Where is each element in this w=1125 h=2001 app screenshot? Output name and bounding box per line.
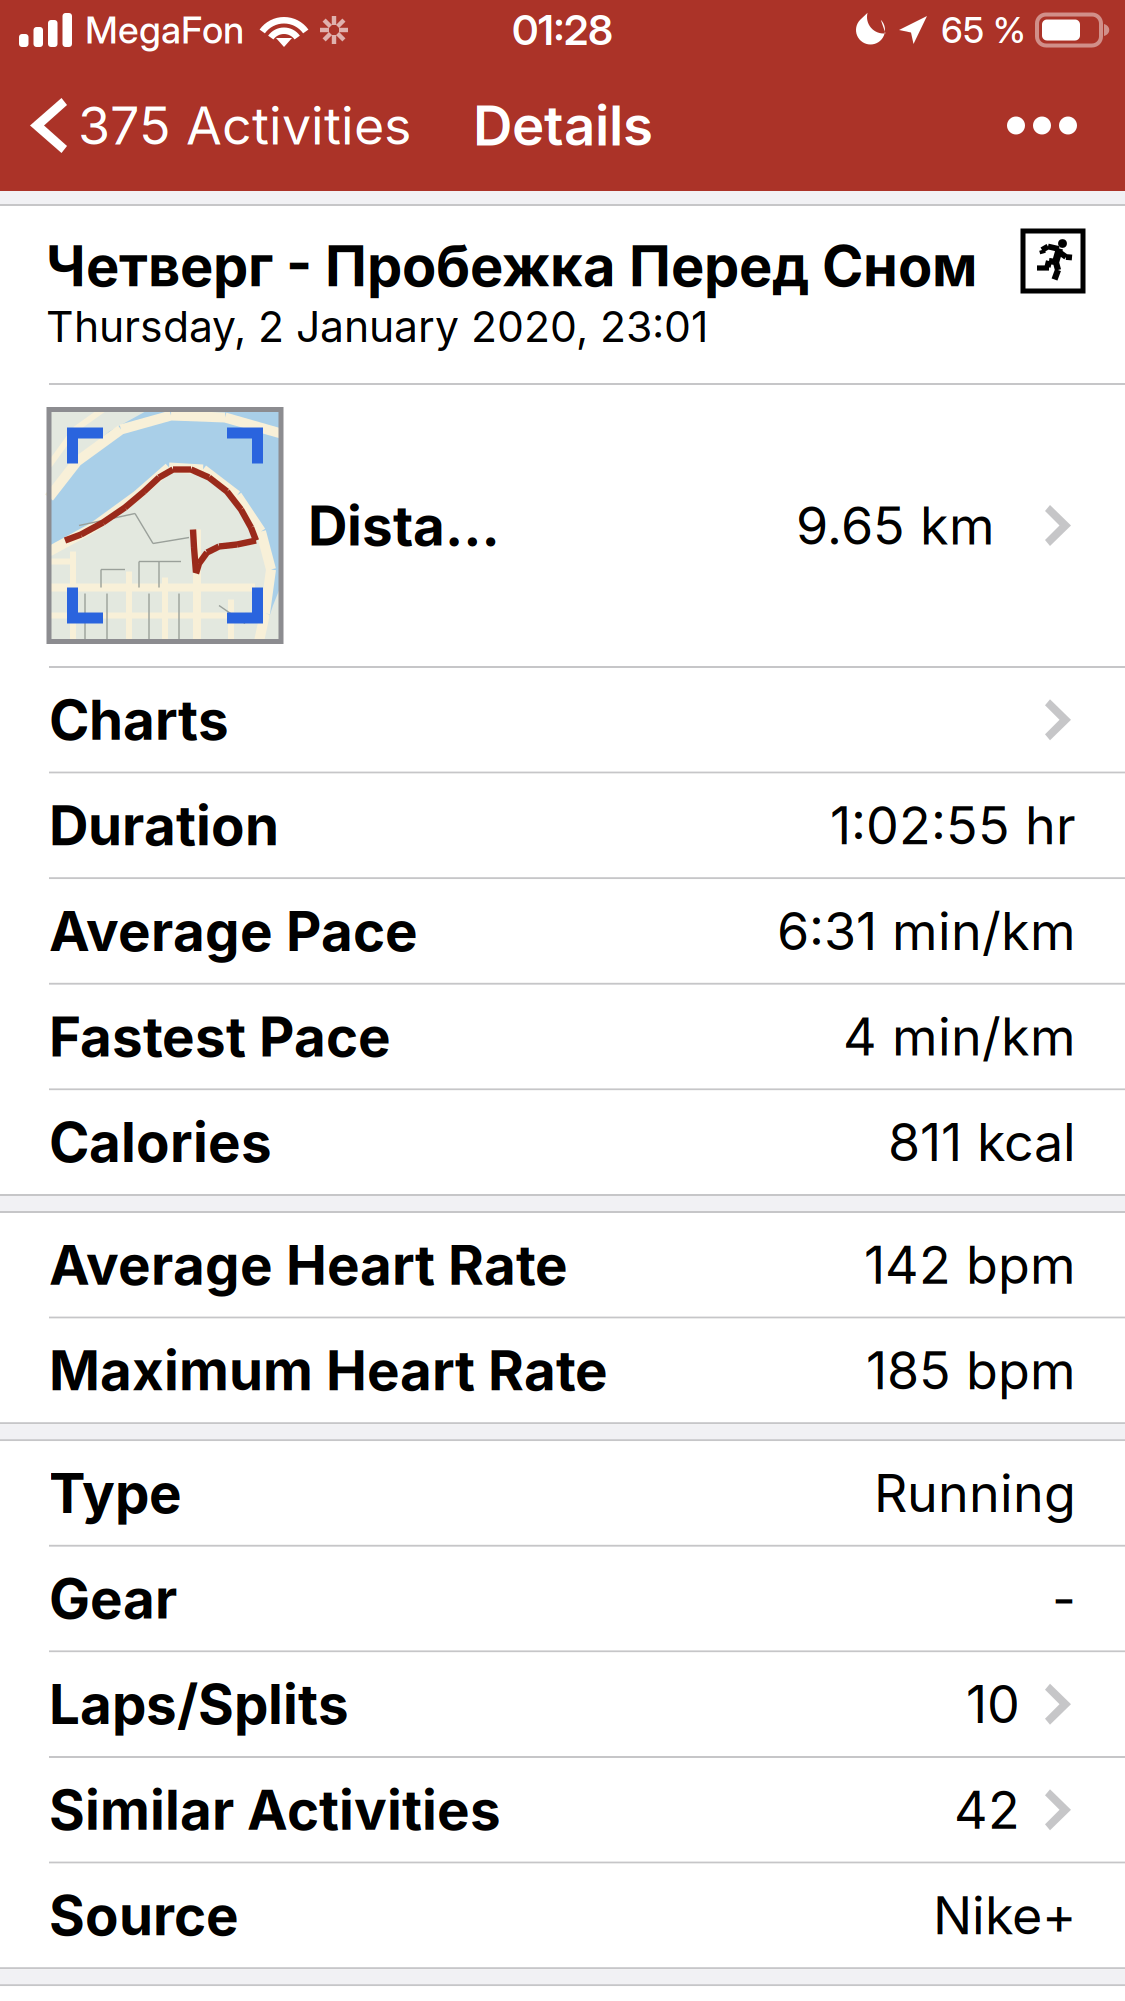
staticText: - (1052, 1567, 1076, 1630)
button[interactable]: Average Pace (0, 879, 1125, 983)
button[interactable]: Charts (0, 668, 1125, 772)
staticText: 01:28 (512, 5, 613, 55)
staticText: Similar Activities (49, 1777, 501, 1843)
staticText: 4 min/km (843, 1005, 1076, 1068)
button[interactable]: Dista… (0, 385, 1125, 666)
staticText: Duration (49, 792, 279, 858)
button[interactable]: Average Heart Rate (0, 1213, 1125, 1317)
staticText: Четверг - Пробежка Перед Сном (46, 232, 977, 300)
button[interactable]: Fastest Pace (0, 985, 1125, 1088)
button[interactable]: Source (0, 1864, 1125, 1967)
button[interactable]: Similar Activities (0, 1758, 1125, 1862)
button[interactable]: Gear (0, 1547, 1125, 1650)
button[interactable]: Maximum Heart Rate (0, 1319, 1125, 1422)
button[interactable]: Duration (0, 774, 1125, 877)
staticText: Average Heart Rate (49, 1232, 568, 1298)
staticText: Laps/Splits (49, 1671, 349, 1737)
staticText: MegaFon (85, 7, 244, 53)
button[interactable]: More options (983, 92, 1101, 158)
staticText: Source (49, 1882, 239, 1948)
staticText: 6:31 min/km (777, 899, 1076, 962)
staticText: Thursday, 2 January 2020, 23:01 (46, 301, 708, 352)
staticText: 142 bpm (864, 1233, 1076, 1296)
staticText: Nike+ (933, 1884, 1076, 1947)
staticText: Details (473, 92, 653, 158)
staticText: Charts (49, 687, 229, 753)
button[interactable]: Laps/Splits (0, 1652, 1125, 1756)
staticText: 10 (966, 1673, 1020, 1736)
staticText: Average Pace (49, 898, 418, 964)
staticText: Dista… (308, 492, 500, 558)
button[interactable]: 375 Activities (0, 86, 411, 165)
staticText: Fastest Pace (49, 1003, 391, 1070)
button[interactable]: Type (0, 1441, 1125, 1545)
staticText: 185 bpm (866, 1339, 1076, 1402)
staticText: Maximum Heart Rate (49, 1337, 608, 1403)
staticText: Gear (49, 1565, 177, 1632)
staticText: Type (49, 1460, 182, 1526)
button[interactable]: Calories (0, 1090, 1125, 1194)
staticText: Calories (49, 1109, 272, 1175)
staticText: 65 % (941, 8, 1026, 52)
staticText: Running (874, 1461, 1076, 1524)
staticText: 375 Activities (78, 94, 411, 157)
staticText: 811 kcal (888, 1111, 1076, 1174)
staticText: 1:02:55 hr (830, 794, 1076, 857)
staticText: 42 (954, 1778, 1020, 1841)
staticText: 9.65 km (796, 494, 995, 557)
